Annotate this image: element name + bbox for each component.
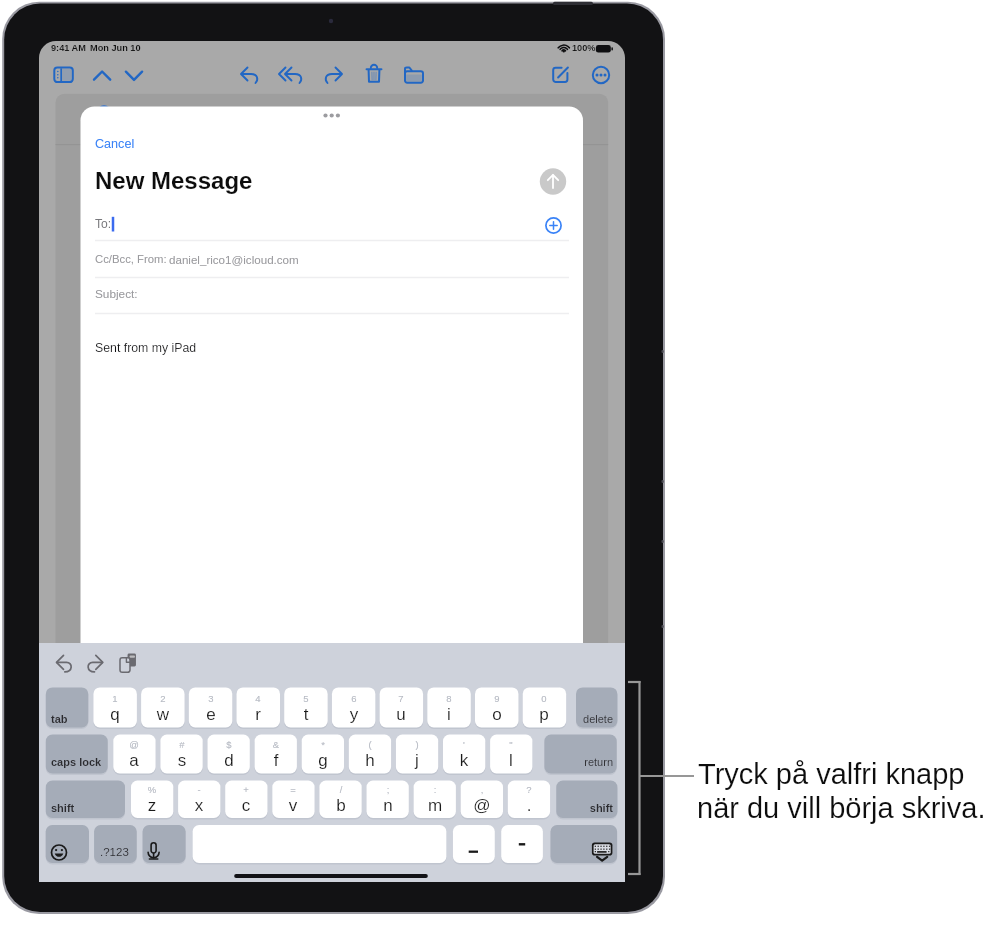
staticText: b: [281, 796, 401, 822]
staticText: :: [375, 784, 495, 798]
staticText: y: [294, 705, 414, 731]
staticText: h: [310, 751, 430, 777]
staticText: m: [375, 796, 495, 822]
staticText: o: [437, 705, 557, 731]
staticText: (: [310, 739, 430, 753]
staticText: =: [233, 784, 353, 798]
staticText: $: [169, 739, 289, 753]
staticText: z: [92, 796, 212, 822]
button[interactable]: Next message: [124, 64, 146, 86]
staticText: delete: [473, 713, 613, 730]
staticText: a: [74, 751, 194, 777]
button[interactable]: Send: [539, 168, 567, 196]
staticText: 4: [198, 693, 318, 707]
staticText: -: [139, 784, 259, 798]
staticText: r: [198, 705, 318, 731]
staticText: daniel_rico1@icloud.com: [169, 253, 299, 266]
staticText: x: [139, 796, 259, 822]
staticText: caps lock: [51, 756, 102, 768]
staticText: .?123: [100, 846, 129, 859]
staticText: return: [473, 756, 613, 773]
staticText: New Message: [95, 167, 253, 194]
staticText: Subject:: [95, 287, 138, 300]
staticText: @: [422, 796, 542, 822]
staticText: g: [263, 751, 383, 777]
staticText: 9: [437, 693, 557, 707]
button[interactable]: Cancel: [94, 133, 136, 155]
staticText: 6: [294, 693, 414, 707]
staticText: w: [103, 705, 223, 731]
staticText: &: [216, 739, 336, 753]
button[interactable]: Compose: [548, 64, 572, 86]
staticText: %: [92, 784, 212, 798]
staticText: j: [357, 751, 477, 777]
staticText: 100%: [572, 43, 596, 53]
staticText: ?: [469, 784, 589, 798]
staticText: 2: [103, 693, 223, 707]
staticText: när du vill börja skriva.: [697, 792, 986, 824]
staticText: 9:41 AM: [51, 43, 86, 53]
staticText: c: [186, 796, 306, 822]
button[interactable]: Toggle sidebar: [55, 64, 75, 86]
staticText: d: [169, 751, 289, 777]
staticText: /: [281, 784, 401, 798]
button[interactable]: Move to folder: [402, 64, 426, 86]
staticText: ': [404, 739, 524, 753]
staticText: 8: [389, 693, 509, 707]
staticText: n: [328, 796, 448, 822]
staticText: u: [341, 705, 461, 731]
staticText: +: [186, 784, 306, 798]
staticText: l: [451, 751, 571, 777]
staticText: e: [151, 705, 271, 731]
button[interactable]: Reply all: [278, 64, 306, 86]
button[interactable]: Forward: [322, 64, 346, 86]
staticText: shift: [51, 802, 75, 814]
staticText: To:: [95, 217, 112, 231]
staticText: 5: [246, 693, 366, 707]
button[interactable]: Add recipient: [540, 212, 568, 240]
staticText: Tryck på valfri knapp: [698, 758, 965, 790]
staticText: ,: [422, 784, 542, 798]
staticText: Cc/Bcc, From:: [95, 253, 167, 266]
staticText: @: [74, 739, 194, 753]
staticText: s: [122, 751, 242, 777]
staticText: Sent from my iPad: [95, 341, 197, 355]
staticText: tab: [51, 713, 68, 725]
staticText: 0: [484, 693, 604, 707]
staticText: v: [233, 796, 353, 822]
staticText: .: [469, 796, 589, 822]
button[interactable]: Reply: [238, 64, 262, 86]
button[interactable]: Delete message: [362, 64, 386, 86]
staticText: p: [484, 705, 604, 731]
staticText: Cancel: [95, 137, 135, 151]
staticText: ;: [328, 784, 448, 798]
staticText: shift: [473, 802, 613, 819]
button[interactable]: Previous message: [92, 64, 114, 86]
staticText: k: [404, 751, 524, 777]
staticText: f: [216, 751, 336, 777]
staticText: t: [246, 705, 366, 731]
staticText: q: [55, 705, 175, 731]
staticText: Mon Jun 10: [90, 43, 141, 53]
staticText: ): [357, 739, 477, 753]
staticText: #: [122, 739, 242, 753]
staticText: 3: [151, 693, 271, 707]
button[interactable]: More options: [588, 64, 612, 86]
staticText: ": [451, 739, 571, 753]
staticText: 1: [55, 693, 175, 707]
staticText: i: [389, 705, 509, 731]
staticText: *: [263, 739, 383, 753]
staticText: 7: [341, 693, 461, 707]
